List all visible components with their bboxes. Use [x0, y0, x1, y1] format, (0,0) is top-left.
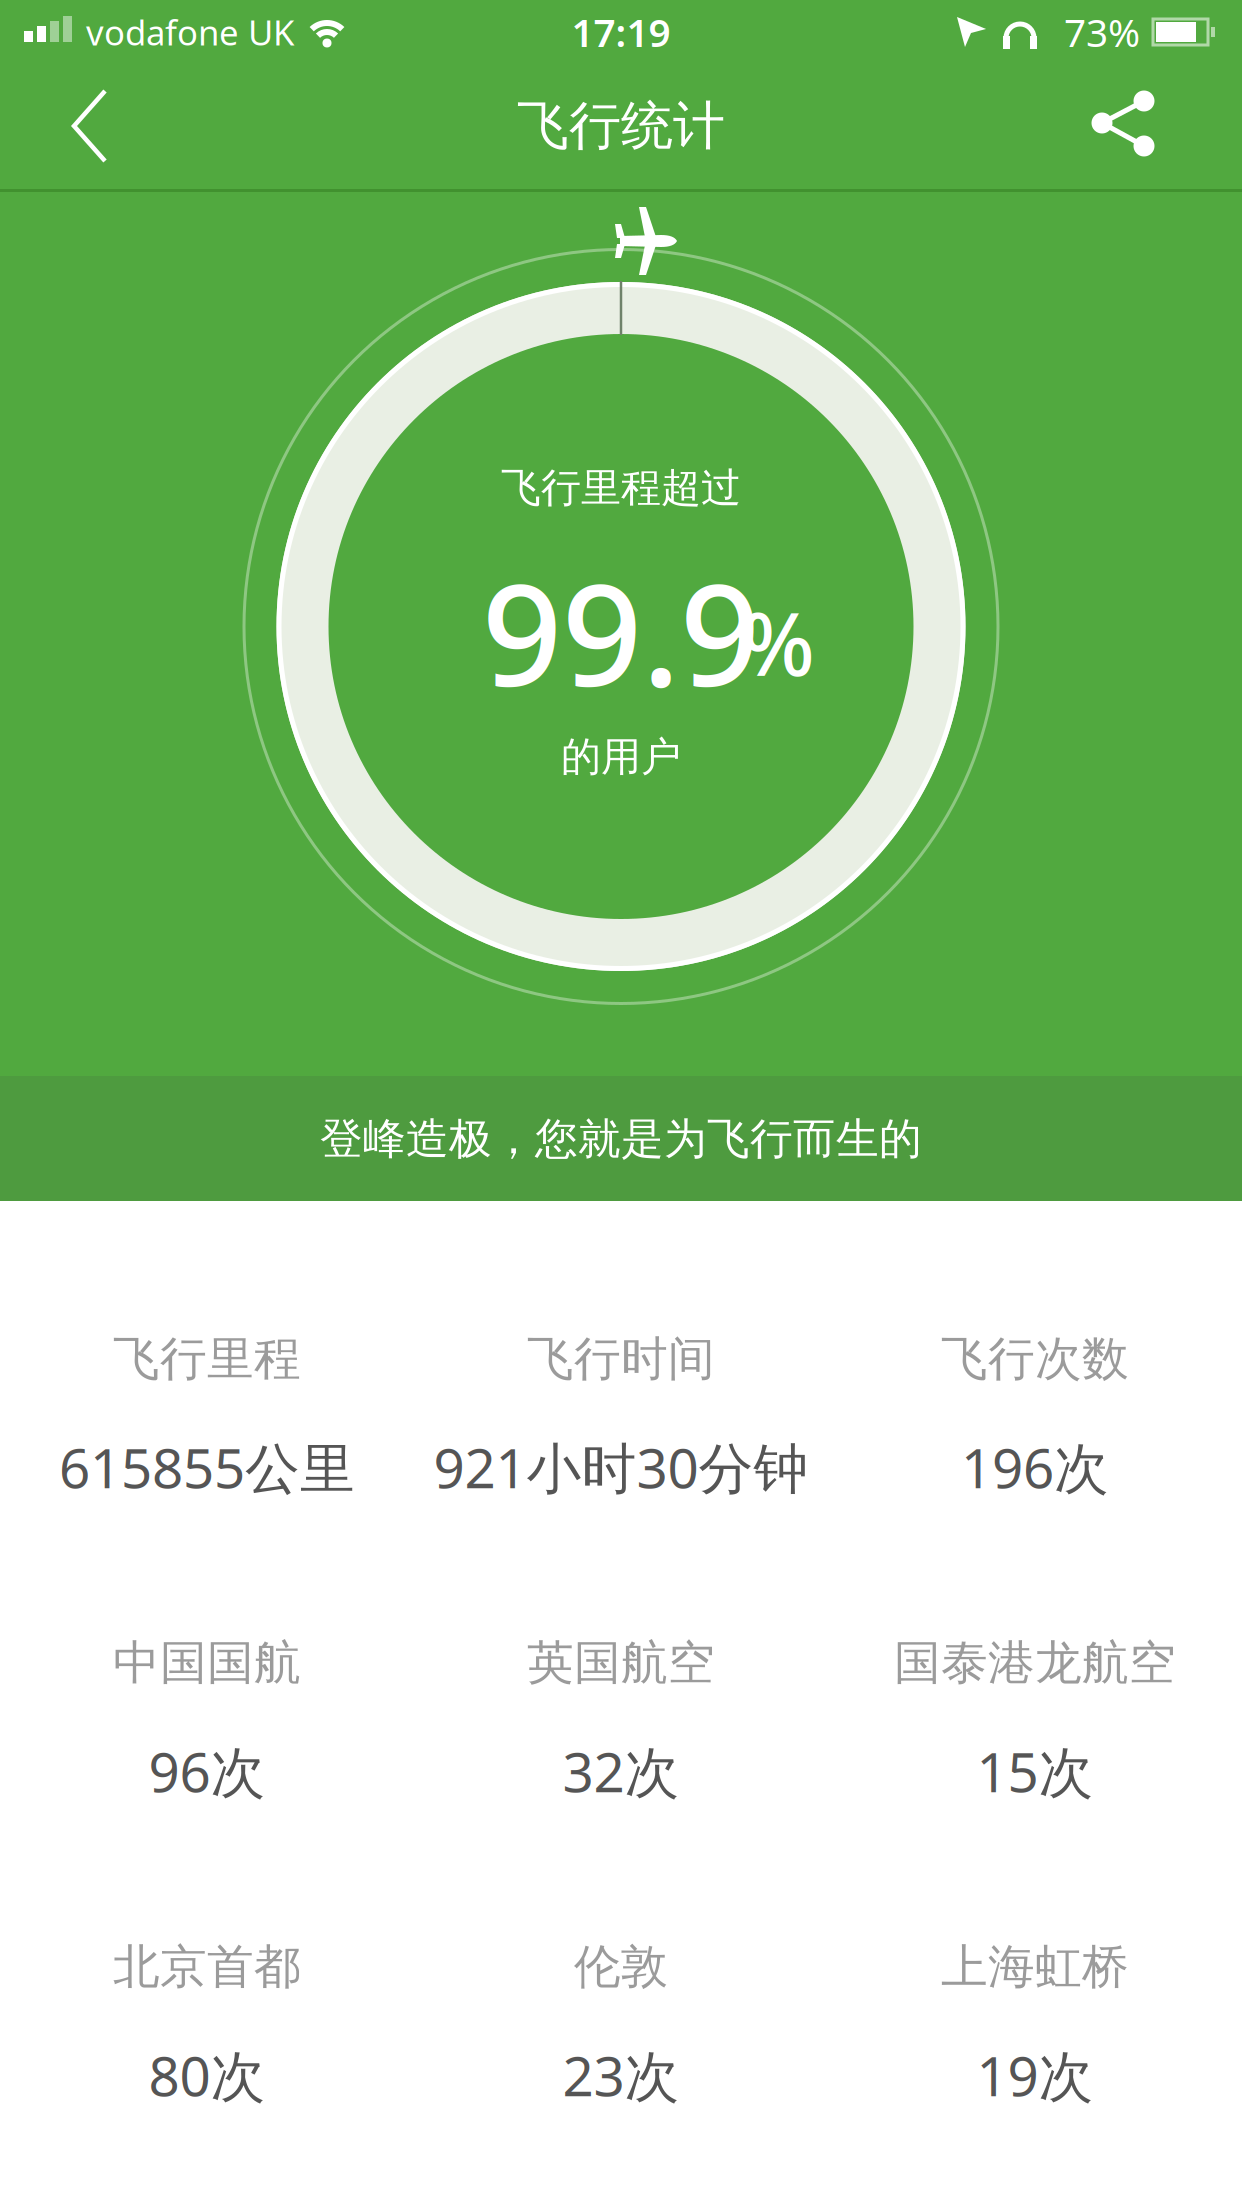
staticText: 615855公里 [59, 1431, 355, 1503]
staticText: 23次 [562, 2039, 679, 2111]
button[interactable]: Share [1056, 60, 1196, 192]
staticText: 飞行统计 [517, 94, 725, 158]
staticText: 15次 [976, 1735, 1093, 1807]
staticText: 73% [1064, 6, 1140, 58]
staticText: 国泰港龙航空 [894, 1634, 1176, 1692]
staticText: 登峰造极，您就是为飞行而生的 [320, 1113, 922, 1165]
staticText: 北京首都 [113, 1938, 301, 1996]
staticText: 伦敦 [574, 1938, 668, 1996]
staticText: 19次 [976, 2039, 1093, 2111]
staticText: 飞行时间 [527, 1330, 715, 1388]
staticText: 96次 [148, 1735, 265, 1807]
staticText: 飞行次数 [941, 1330, 1129, 1388]
staticText: 飞行里程超过 [501, 463, 741, 512]
staticText: 921小时30分钟 [433, 1431, 808, 1503]
staticText: 99.9 [482, 539, 760, 725]
staticText: vodafone UK [86, 9, 294, 55]
staticText: 196次 [961, 1431, 1109, 1503]
staticText: % [741, 584, 815, 700]
staticText: 英国航空 [527, 1634, 715, 1692]
staticText: 的用户 [561, 732, 681, 781]
staticText: 飞行里程 [113, 1330, 301, 1388]
staticText: 中国国航 [113, 1634, 301, 1692]
staticText: 80次 [148, 2039, 265, 2111]
button[interactable]: Back [0, 60, 170, 192]
staticText: 17:19 [571, 6, 670, 58]
staticText: 32次 [562, 1735, 679, 1807]
staticText: 上海虹桥 [941, 1938, 1129, 1996]
